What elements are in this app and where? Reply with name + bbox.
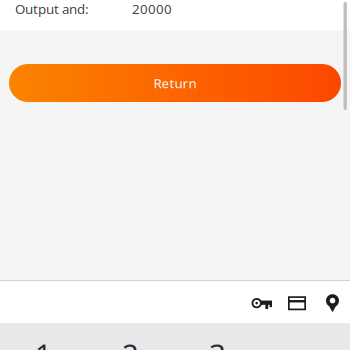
staticText: Output and: (15, 0, 89, 18)
button[interactable]: Passwords (244, 286, 274, 318)
staticText: 3 (209, 334, 226, 350)
button[interactable]: 1 (0, 341, 87, 350)
staticText: 20000 (132, 0, 172, 18)
button[interactable]: Credit cards (281, 285, 309, 319)
staticText: Return (153, 74, 196, 92)
button[interactable]: 3 (174, 341, 261, 350)
button[interactable]: 2 (87, 341, 174, 350)
staticText: 2 (122, 334, 139, 350)
button[interactable]: Return (9, 64, 341, 102)
button[interactable]: Addresses (320, 285, 343, 319)
staticText: 1 (35, 334, 52, 350)
